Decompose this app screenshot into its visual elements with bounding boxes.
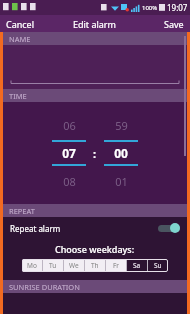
button[interactable] [3, 45, 187, 89]
button[interactable]: 07 [52, 142, 86, 164]
button[interactable]: Save [158, 15, 190, 32]
button[interactable]: 08 [52, 170, 86, 192]
staticText: Th [91, 261, 99, 270]
staticText: 07 [62, 145, 76, 161]
button[interactable]: 01 [104, 170, 138, 192]
staticText: 59 [115, 118, 128, 133]
staticText: Mo [27, 261, 37, 270]
button[interactable]: Su [148, 259, 168, 272]
staticText: NAME [9, 34, 31, 44]
staticText: Cancel [6, 18, 35, 30]
staticText: Save [164, 18, 184, 30]
other: Repeat alarm toggle [158, 223, 180, 233]
button[interactable]: 00 [104, 142, 138, 164]
button[interactable]: We [64, 259, 84, 272]
staticText: Edit alarm [73, 18, 117, 30]
staticText: SUNRISE DURATION [9, 282, 80, 292]
button[interactable]: Th [85, 259, 105, 272]
staticText: REPEAT [9, 206, 35, 216]
button[interactable]: Cancel [0, 15, 41, 32]
staticText: 08 [63, 174, 76, 189]
staticText: TIME [9, 91, 27, 101]
staticText: 19:07 [167, 2, 188, 13]
staticText: We [69, 261, 79, 270]
staticText: Fr [113, 261, 120, 270]
button[interactable]: Mo [22, 259, 42, 272]
button[interactable]: Sa [127, 259, 147, 272]
staticText: Sa [133, 261, 141, 270]
staticText: Su [154, 261, 162, 270]
button[interactable]: 06 [52, 114, 86, 136]
staticText: Repeat alarm [10, 223, 61, 234]
staticText: : [93, 146, 97, 161]
staticText: 06 [63, 118, 76, 133]
staticText: 100% [142, 4, 158, 12]
staticText: Tu [49, 261, 57, 270]
button[interactable]: Repeat alarm [3, 217, 187, 239]
button[interactable]: 59 [104, 114, 138, 136]
staticText: Choose weekdays: [55, 243, 135, 255]
staticText: 01 [115, 174, 128, 189]
button[interactable]: Tu [43, 259, 63, 272]
button[interactable]: Fr [106, 259, 126, 272]
staticText: 00 [114, 145, 128, 161]
